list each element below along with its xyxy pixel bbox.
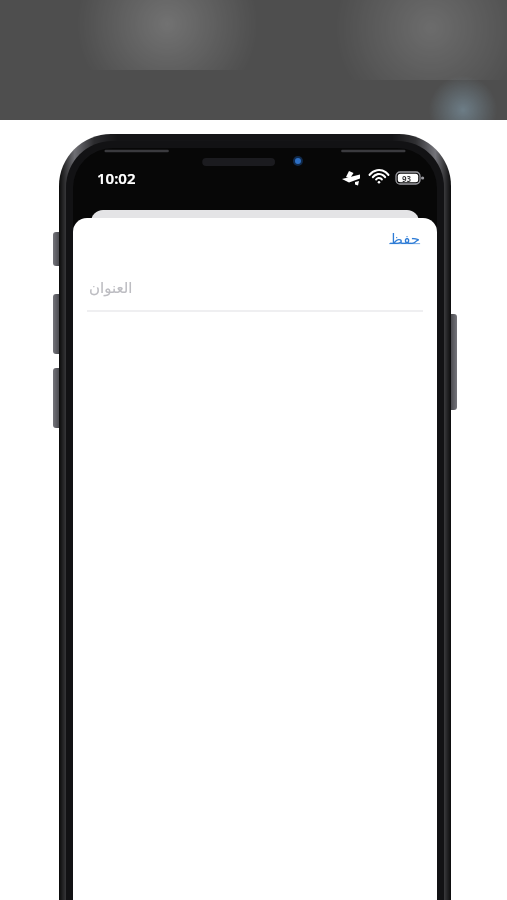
button[interactable]: Volume down [53, 368, 60, 428]
staticText: العنوان [89, 279, 133, 296]
staticText: حفظ [389, 230, 421, 247]
staticText: 93 [402, 173, 412, 184]
button[interactable]: Power [450, 314, 457, 410]
button[interactable]: حفظ [389, 230, 421, 247]
button[interactable]: Silent switch [53, 232, 60, 266]
staticText: 10:02 [97, 168, 136, 188]
button[interactable]: العنوان [73, 266, 437, 308]
button[interactable]: Volume up [53, 294, 60, 354]
